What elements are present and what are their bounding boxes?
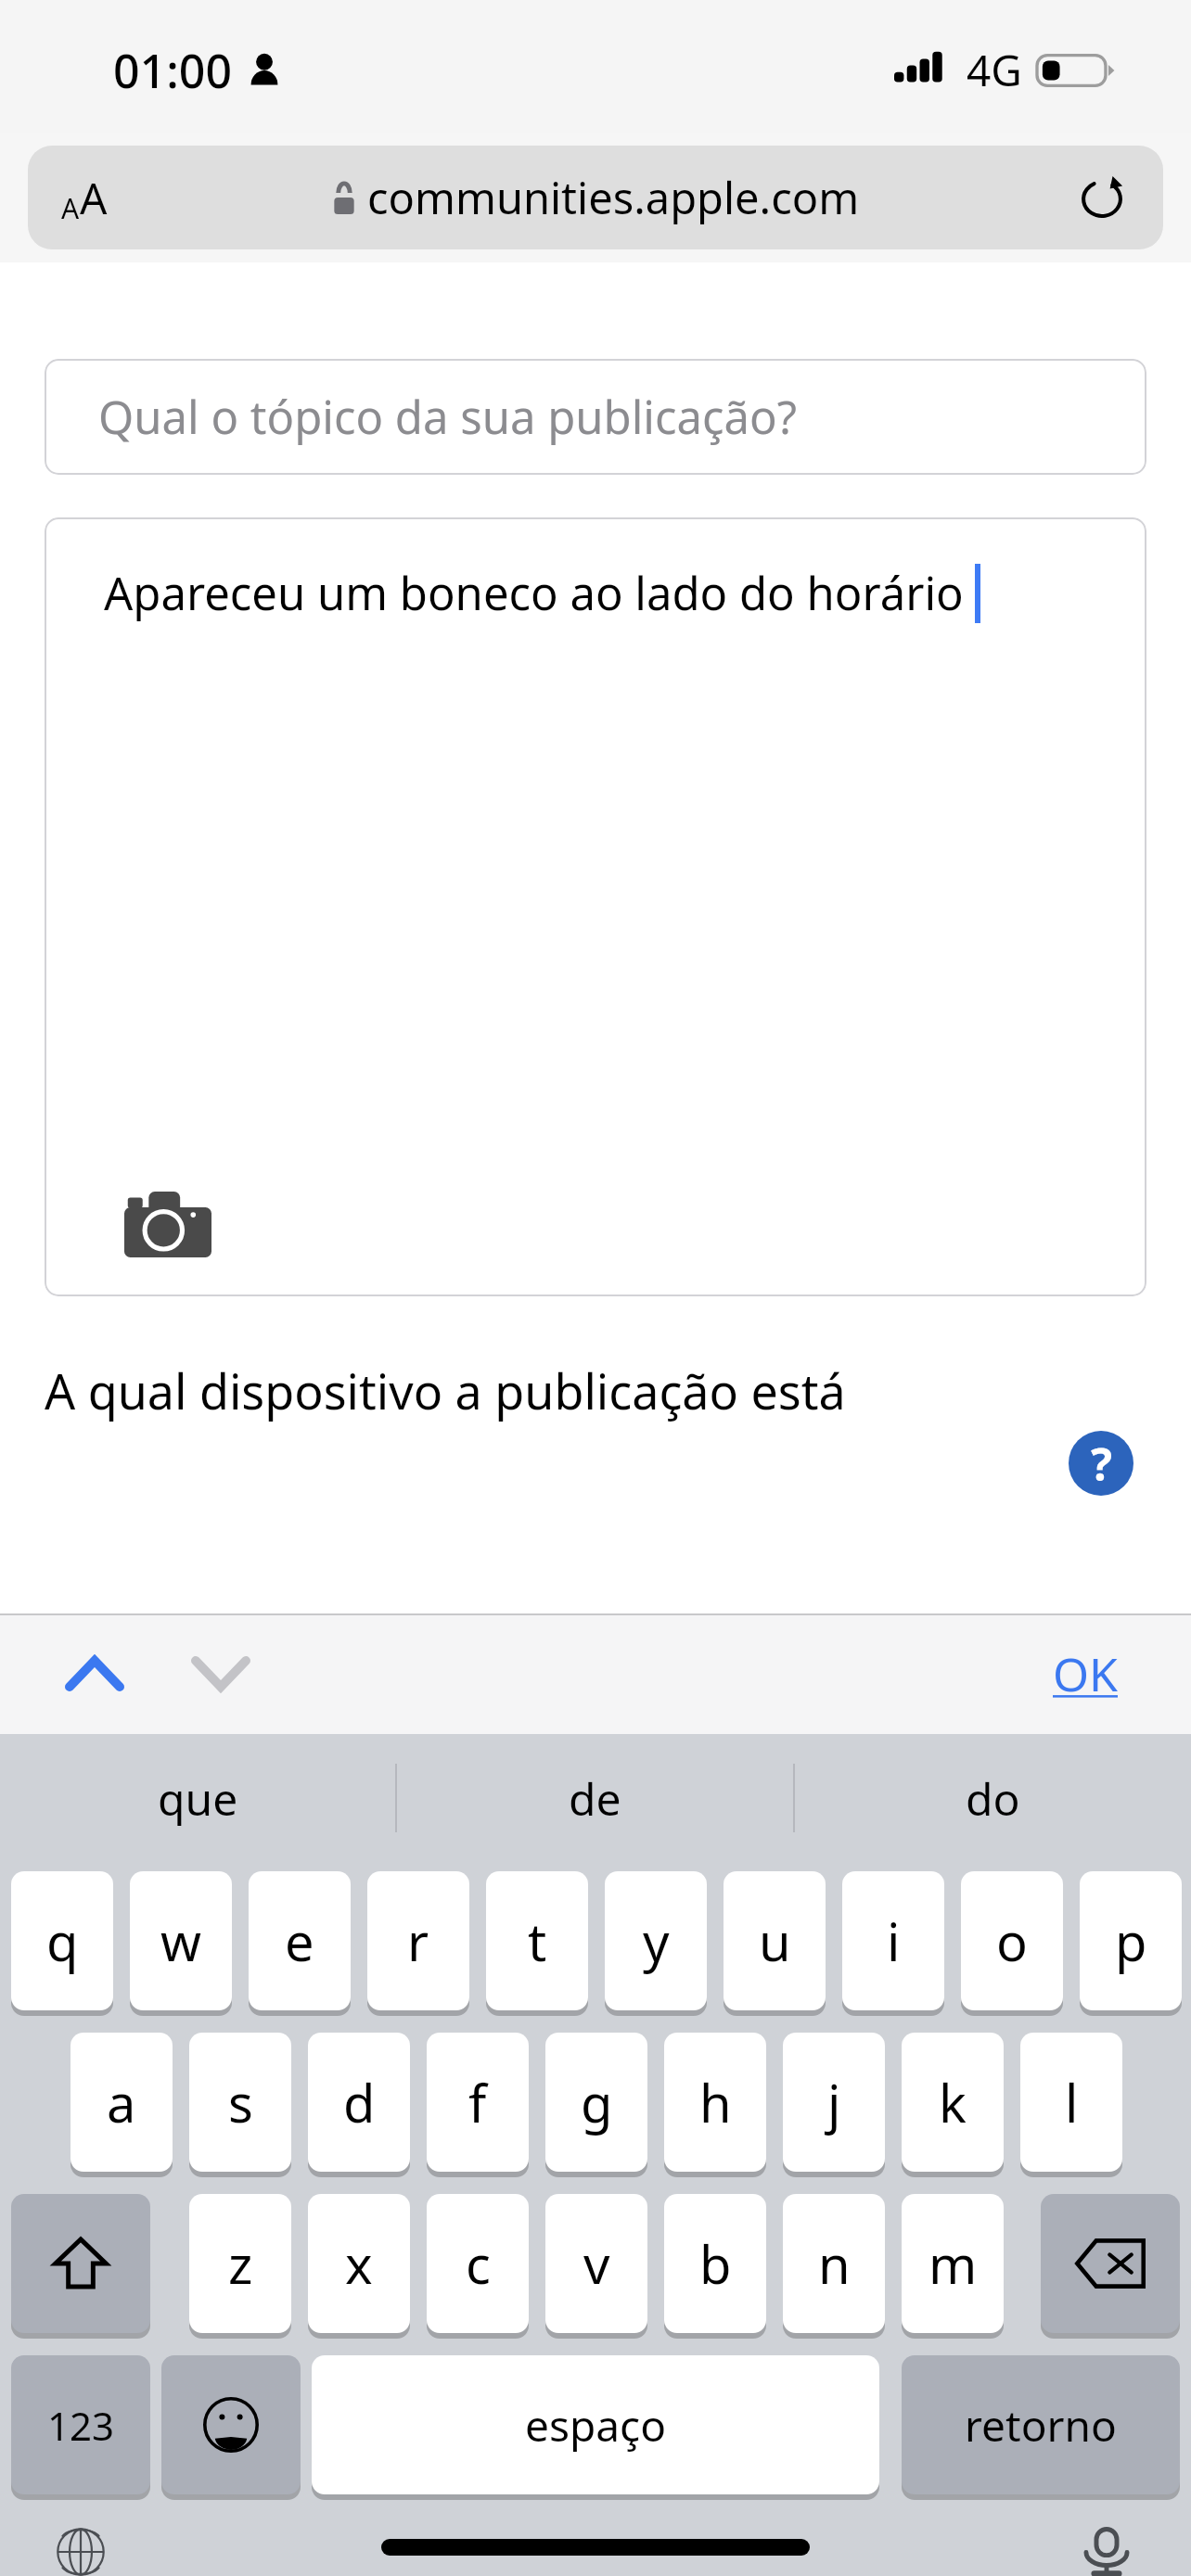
- staticText: d: [343, 2067, 376, 2137]
- staticText: q: [46, 1906, 79, 1976]
- button[interactable]: v: [545, 2194, 647, 2333]
- staticText: Qual o tópico da sua publicação?: [98, 386, 797, 448]
- button[interactable]: Help: [1069, 1431, 1133, 1496]
- button[interactable]: r: [367, 1871, 469, 2010]
- button[interactable]: c: [427, 2194, 529, 2333]
- button[interactable]: o: [961, 1871, 1063, 2010]
- staticText: r: [407, 1906, 429, 1976]
- button[interactable]: g: [545, 2033, 647, 2172]
- staticText: m: [928, 2228, 978, 2299]
- staticText: OK: [1053, 1642, 1118, 1705]
- button[interactable]: p: [1080, 1871, 1182, 2010]
- staticText: w: [160, 1906, 202, 1976]
- button[interactable]: Shift: [11, 2194, 150, 2333]
- staticText: communities.apple.com: [367, 168, 860, 227]
- button[interactable]: i: [842, 1871, 944, 2010]
- staticText: A: [80, 169, 108, 227]
- staticText: Apareceu um boneco ao lado do horário: [104, 562, 964, 624]
- button[interactable]: s: [189, 2033, 291, 2172]
- button[interactable]: Apareceu um boneco ao lado do horário: [45, 517, 1146, 1296]
- staticText: v: [583, 2228, 610, 2299]
- staticText: t: [528, 1906, 547, 1976]
- staticText: espaço: [525, 2396, 666, 2455]
- staticText: i: [887, 1906, 901, 1976]
- staticText: que: [158, 1768, 238, 1829]
- staticText: e: [285, 1906, 314, 1976]
- button[interactable]: z: [189, 2194, 291, 2333]
- button[interactable]: b: [664, 2194, 766, 2333]
- button[interactable]: x: [308, 2194, 410, 2333]
- staticText: g: [581, 2067, 613, 2137]
- staticText: h: [699, 2067, 732, 2137]
- button[interactable]: Backspace: [1041, 2194, 1180, 2333]
- button[interactable]: Page settings: [28, 146, 1163, 249]
- button[interactable]: 123: [11, 2355, 150, 2494]
- staticText: s: [228, 2067, 253, 2137]
- button[interactable]: Previous field: [43, 1622, 147, 1726]
- button[interactable]: h: [664, 2033, 766, 2172]
- button[interactable]: Dictation: [1056, 2528, 1158, 2576]
- button[interactable]: u: [724, 1871, 826, 2010]
- button[interactable]: m: [902, 2194, 1004, 2333]
- button[interactable]: l: [1020, 2033, 1122, 2172]
- staticText: 4G: [967, 41, 1022, 99]
- staticText: 123: [47, 2399, 115, 2452]
- staticText: l: [1065, 2067, 1079, 2137]
- button[interactable]: Change keyboard: [30, 2528, 132, 2576]
- button[interactable]: do: [795, 1734, 1191, 1862]
- button[interactable]: d: [308, 2033, 410, 2172]
- staticText: do: [966, 1768, 1020, 1829]
- staticText: n: [818, 2228, 851, 2299]
- button[interactable]: Qual o tópico da sua publicação?: [45, 359, 1146, 475]
- button[interactable]: Add photo: [124, 1189, 211, 1257]
- staticText: f: [468, 2067, 487, 2137]
- staticText: j: [827, 2067, 841, 2137]
- staticText: y: [643, 1906, 670, 1976]
- staticText: A qual dispositivo a publicação está: [45, 1358, 846, 1423]
- staticText: p: [1115, 1906, 1147, 1976]
- button[interactable]: Next field: [169, 1622, 273, 1726]
- button[interactable]: t: [486, 1871, 588, 2010]
- button[interactable]: k: [902, 2033, 1004, 2172]
- button[interactable]: espaço: [312, 2355, 879, 2494]
- button[interactable]: f: [427, 2033, 529, 2172]
- button[interactable]: Emoji: [161, 2355, 301, 2494]
- staticText: A: [61, 189, 80, 227]
- button[interactable]: j: [783, 2033, 885, 2172]
- button[interactable]: retorno: [902, 2355, 1180, 2494]
- button[interactable]: que: [0, 1734, 395, 1862]
- button[interactable]: a: [70, 2033, 173, 2172]
- staticText: k: [939, 2067, 967, 2137]
- staticText: b: [699, 2228, 732, 2299]
- staticText: retorno: [965, 2396, 1117, 2455]
- staticText: 01:00: [113, 39, 232, 102]
- staticText: u: [759, 1906, 791, 1976]
- staticText: x: [345, 2228, 373, 2299]
- button[interactable]: Page settings: [61, 169, 108, 227]
- staticText: de: [569, 1768, 621, 1829]
- button[interactable]: q: [11, 1871, 113, 2010]
- staticText: a: [107, 2067, 136, 2137]
- button[interactable]: w: [130, 1871, 232, 2010]
- button[interactable]: Reload: [1072, 168, 1132, 227]
- button[interactable]: n: [783, 2194, 885, 2333]
- button[interactable]: de: [397, 1734, 793, 1862]
- staticText: o: [996, 1906, 1028, 1976]
- button[interactable]: y: [605, 1871, 707, 2010]
- button[interactable]: e: [249, 1871, 351, 2010]
- button[interactable]: OK: [1030, 1622, 1141, 1726]
- staticText: c: [466, 2228, 491, 2299]
- staticText: z: [228, 2228, 253, 2299]
- staticText: ?: [1091, 1434, 1112, 1494]
